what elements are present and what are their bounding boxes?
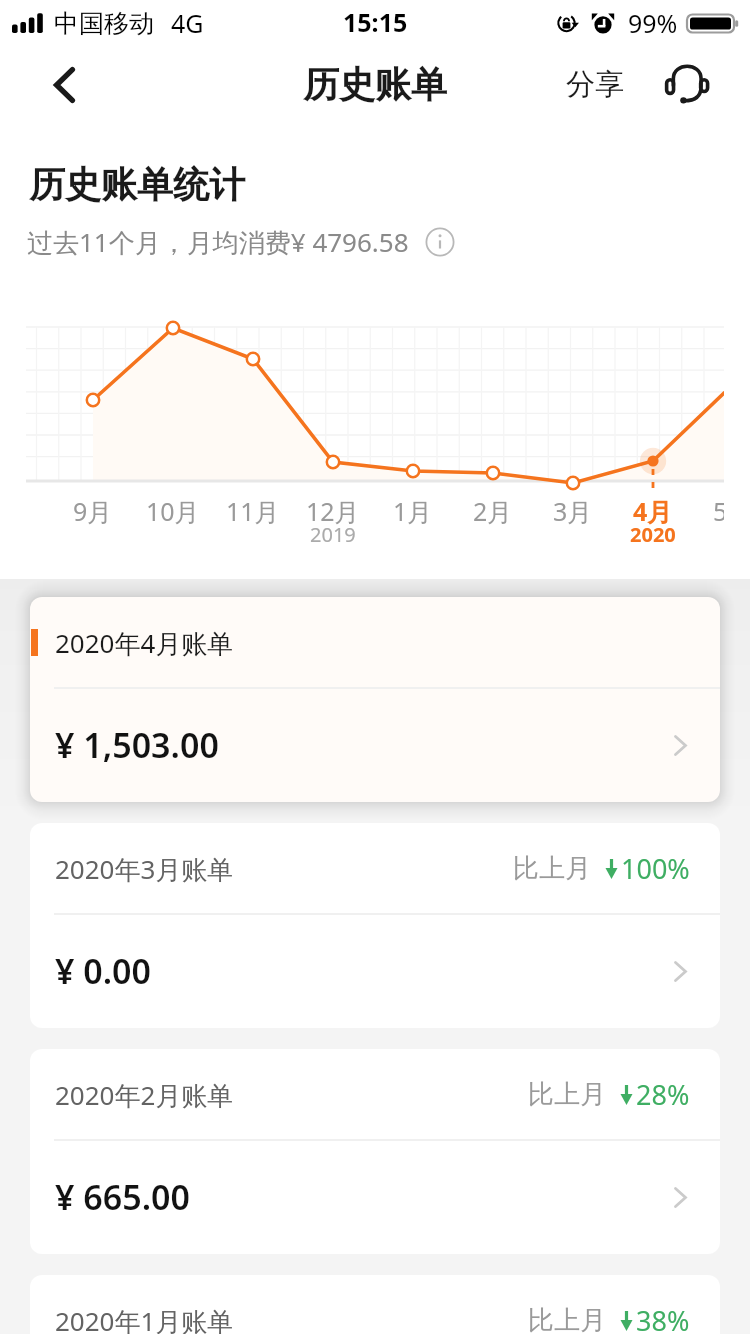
- staticText: 15:15: [343, 5, 408, 39]
- staticText: 2020年3月账单: [55, 851, 234, 887]
- button[interactable]: 2020年1月账单: [30, 1275, 720, 1334]
- button[interactable]: Back: [16, 50, 112, 120]
- staticText: 历史账单: [303, 62, 447, 107]
- staticText: 历史账单统计: [29, 162, 245, 207]
- staticText: 2019: [310, 521, 356, 548]
- staticText: 28%: [636, 1076, 690, 1113]
- staticText: 10月: [146, 494, 200, 528]
- staticText: 5月: [713, 494, 724, 528]
- staticText: 100%: [621, 850, 690, 887]
- staticText: 2020年1月账单: [55, 1303, 234, 1334]
- staticText: 38%: [636, 1302, 690, 1334]
- staticText: 中国移动: [54, 8, 154, 39]
- staticText: 3月: [553, 494, 593, 528]
- staticText: 分享: [566, 66, 624, 103]
- staticText: ¥ 1,503.00: [55, 722, 219, 768]
- staticText: 12月: [306, 494, 360, 528]
- staticText: 11月: [226, 494, 280, 528]
- staticText: 2020年4月账单: [55, 625, 234, 661]
- button[interactable]: 2020年3月账单: [30, 823, 720, 1028]
- button[interactable]: 2020年4月账单: [30, 597, 720, 802]
- staticText: ¥ 0.00: [55, 948, 152, 994]
- button[interactable]: Customer service: [655, 51, 719, 113]
- staticText: 过去11个月，月均消费¥ 4796.58: [27, 224, 409, 260]
- staticText: 99%: [628, 6, 678, 40]
- staticText: 比上月: [513, 852, 591, 885]
- staticText: 4月: [633, 494, 673, 528]
- staticText: 2020年2月账单: [55, 1077, 234, 1113]
- staticText: 比上月: [528, 1304, 606, 1334]
- staticText: 9月: [73, 494, 113, 528]
- button[interactable]: 2020年2月账单: [30, 1049, 720, 1254]
- staticText: 4G: [171, 6, 204, 40]
- staticText: 2020: [630, 521, 676, 548]
- staticText: ¥ 665.00: [55, 1174, 190, 1220]
- staticText: 1月: [393, 494, 433, 528]
- staticText: 比上月: [528, 1078, 606, 1111]
- staticText: 2月: [473, 494, 513, 528]
- button[interactable]: 分享: [560, 53, 630, 115]
